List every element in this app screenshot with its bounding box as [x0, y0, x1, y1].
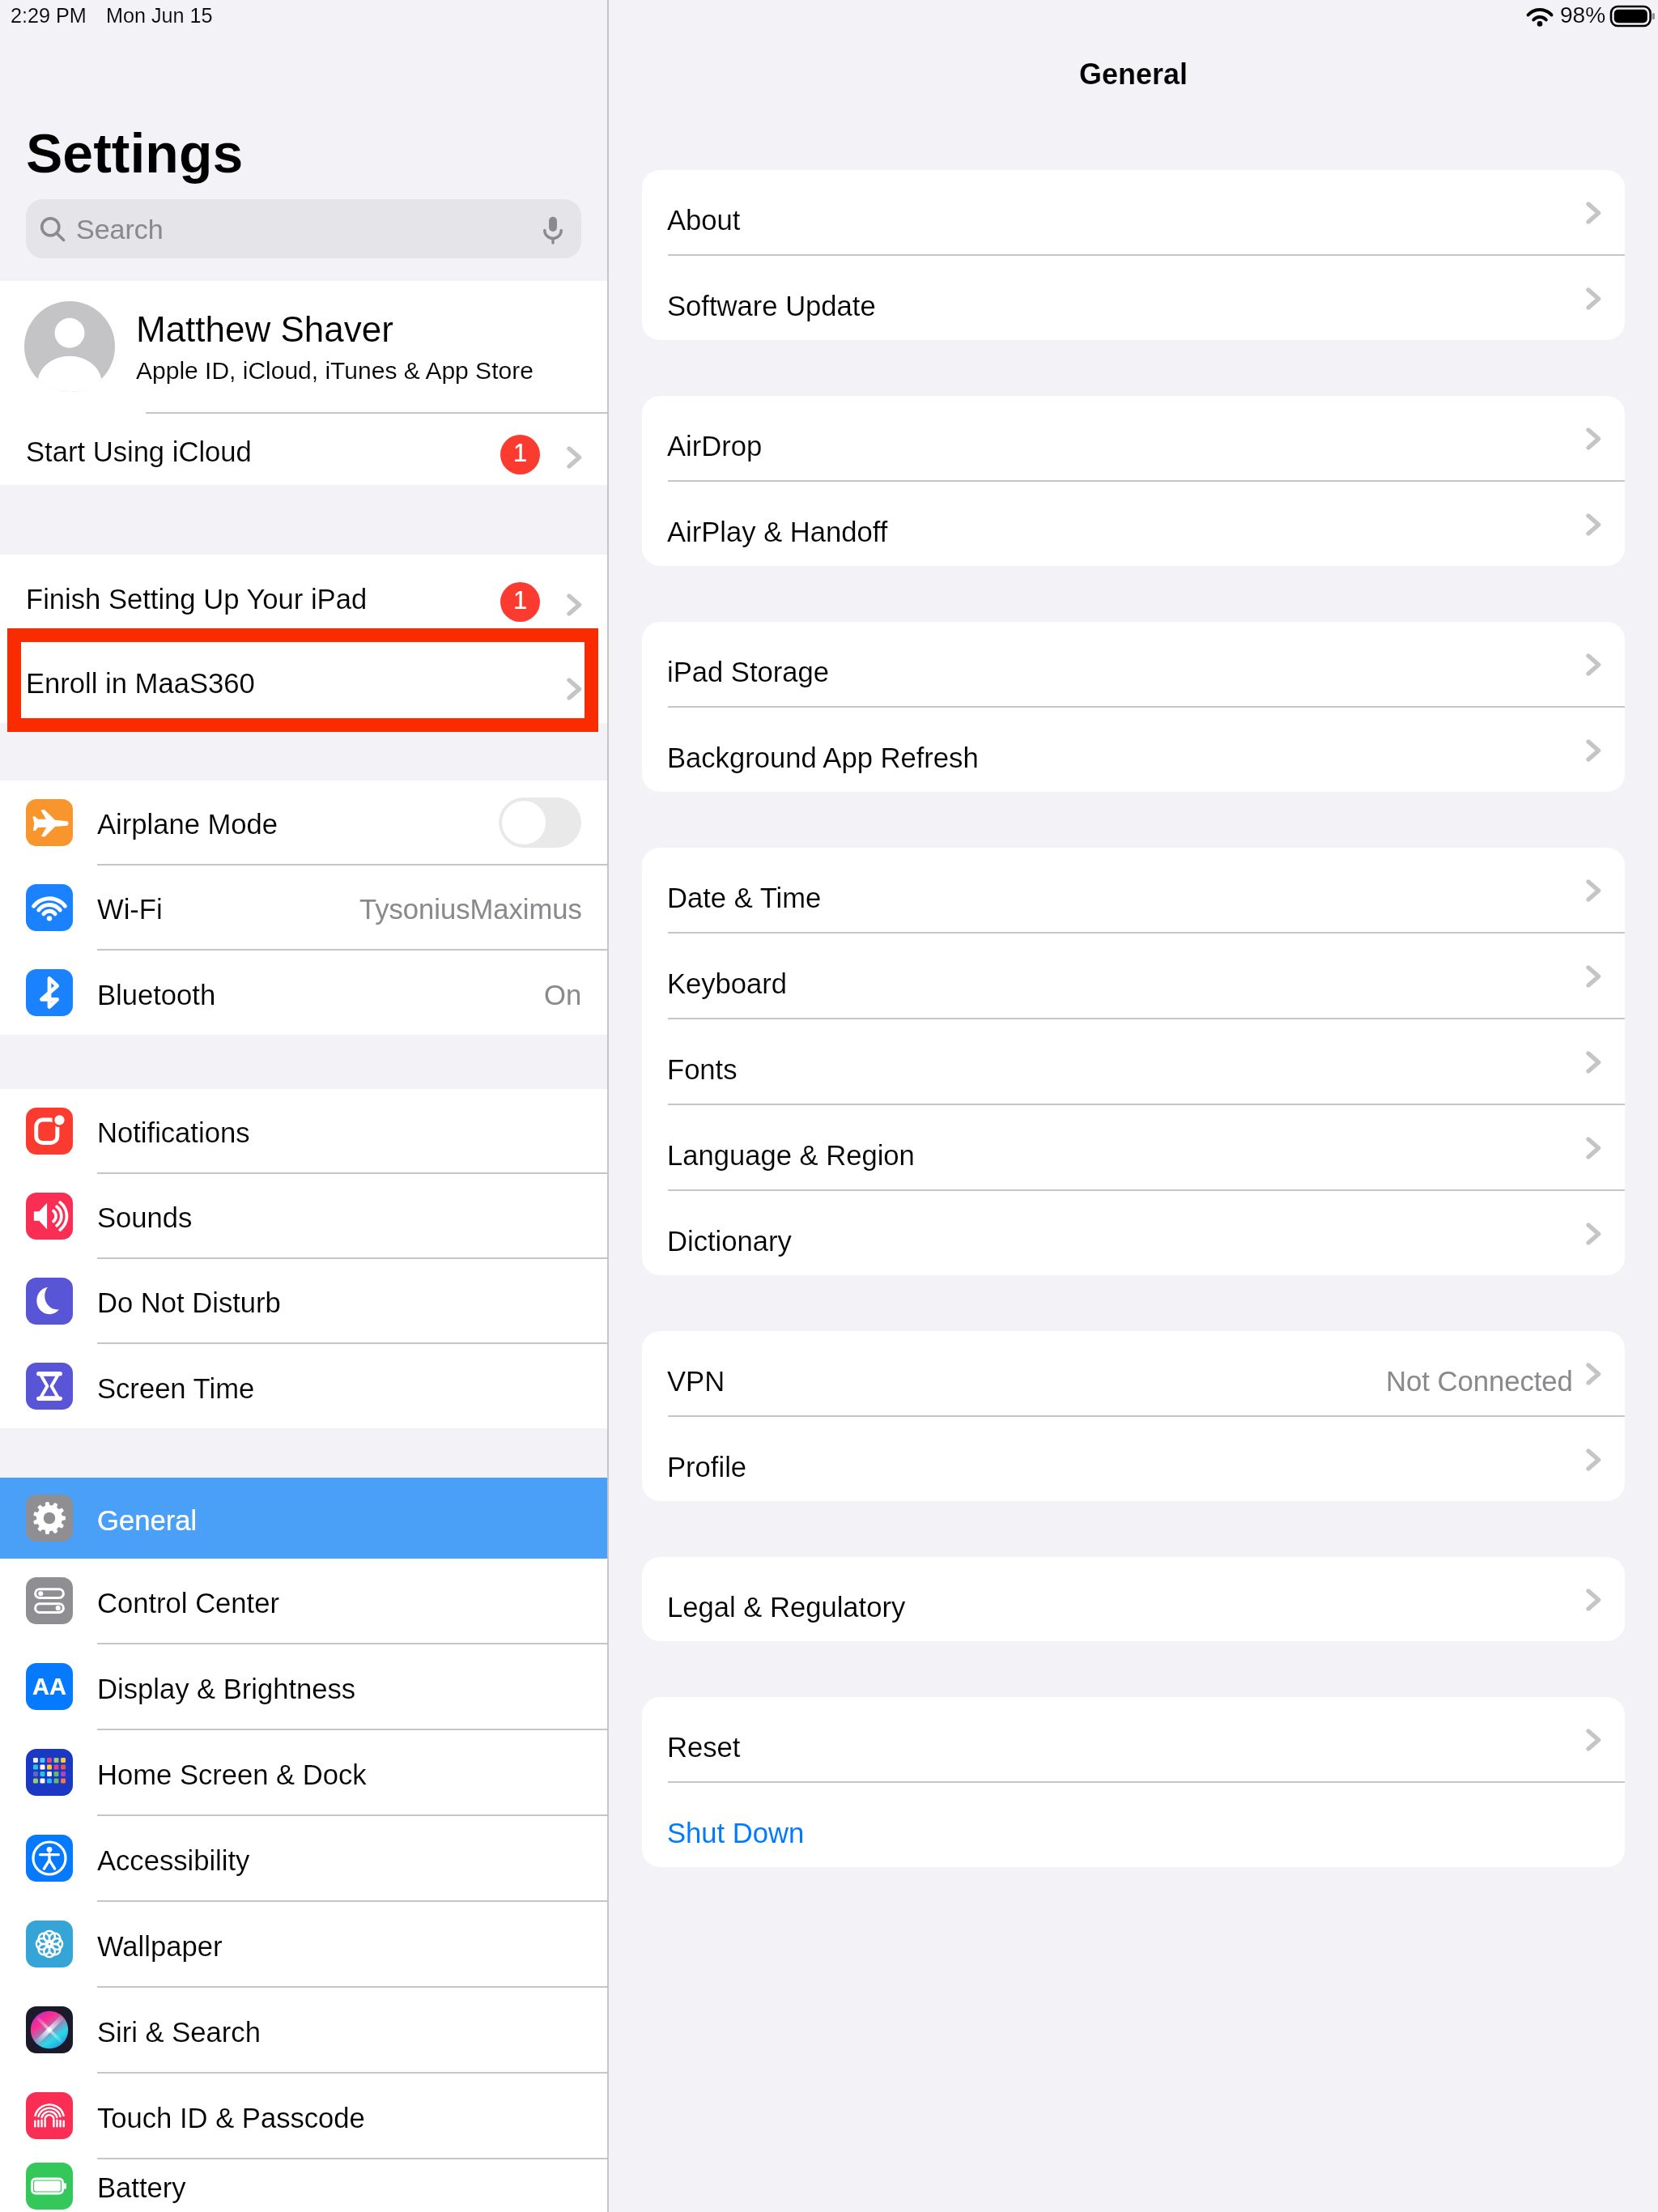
staticText: Matthew Shaver	[136, 309, 393, 349]
staticText: Fonts	[667, 1054, 738, 1086]
staticText: Not Connected	[1386, 1366, 1573, 1397]
staticText: VPN	[667, 1366, 725, 1397]
button[interactable]: Sounds	[0, 1174, 607, 1259]
button[interactable]: Airplane Mode toggle	[499, 798, 581, 848]
button[interactable]: Keyboard	[642, 934, 1625, 1019]
button[interactable]: Start Using iCloud	[0, 414, 607, 485]
staticText: Settings	[26, 122, 244, 184]
staticText: Accessibility	[97, 1845, 250, 1877]
staticText: TysoniusMaximus	[359, 894, 582, 925]
button[interactable]: Matthew Shaver	[0, 281, 607, 412]
button[interactable]: Accessibility	[0, 1816, 607, 1902]
staticText: Touch ID & Passcode	[97, 2103, 365, 2134]
button[interactable]: Finish Setting Up Your iPad	[0, 555, 607, 639]
staticText: 1	[513, 439, 528, 467]
staticText: Siri & Search	[97, 2017, 261, 2048]
staticText: Enroll in MaaS360	[26, 668, 255, 700]
button[interactable]: iPad Storage	[642, 622, 1625, 708]
button[interactable]: Search	[26, 199, 581, 258]
staticText: AirDrop	[667, 431, 763, 462]
staticText: Wi-Fi	[97, 894, 163, 925]
staticText: 1	[513, 586, 528, 615]
button[interactable]: Home Screen & Dock	[0, 1730, 607, 1816]
staticText: Keyboard	[667, 968, 788, 1000]
staticText: Start Using iCloud	[26, 436, 252, 468]
button[interactable]: Enroll in MaaS360	[0, 639, 607, 723]
button[interactable]: Bluetooth	[0, 951, 607, 1035]
staticText: General	[609, 57, 1658, 90]
staticText: General	[97, 1505, 198, 1537]
button[interactable]: Control Center	[0, 1559, 607, 1644]
button[interactable]: Date & Time	[642, 848, 1625, 934]
staticText: Airplane Mode	[97, 809, 278, 840]
button[interactable]: Do Not Disturb	[0, 1259, 607, 1344]
staticText: Control Center	[97, 1588, 279, 1619]
button[interactable]: Dictation	[538, 214, 568, 245]
button[interactable]: Language & Region	[642, 1105, 1625, 1191]
staticText: Screen Time	[97, 1373, 255, 1405]
staticText: Sounds	[97, 1202, 193, 1234]
button[interactable]: Background App Refresh	[642, 708, 1625, 792]
staticText: Software Update	[667, 291, 876, 322]
button[interactable]: Wi-Fi	[0, 866, 607, 951]
button[interactable]: Legal & Regulatory	[642, 1557, 1625, 1641]
staticText: Dictionary	[667, 1226, 792, 1257]
button[interactable]: AirPlay & Handoff	[642, 482, 1625, 566]
staticText: AA	[32, 1674, 66, 1699]
button[interactable]: Notifications	[0, 1089, 607, 1174]
button[interactable]: About	[642, 170, 1625, 256]
button[interactable]: Screen Time	[0, 1344, 607, 1428]
staticText: Apple ID, iCloud, iTunes & App Store	[136, 357, 534, 385]
staticText: Battery	[97, 2172, 186, 2204]
button[interactable]: General	[0, 1478, 607, 1559]
button[interactable]: Shut Down	[642, 1783, 1625, 1867]
button[interactable]: VPN	[642, 1331, 1625, 1417]
button[interactable]: Reset	[642, 1697, 1625, 1783]
button[interactable]: Battery	[0, 2159, 607, 2212]
staticText: Home Screen & Dock	[97, 1759, 367, 1791]
staticText: Date & Time	[667, 883, 822, 914]
button[interactable]: Fonts	[642, 1019, 1625, 1105]
button[interactable]: Touch ID & Passcode	[0, 2074, 607, 2159]
button[interactable]: Dictionary	[642, 1191, 1625, 1275]
staticText: Mon Jun 15	[106, 4, 213, 27]
staticText: AirPlay & Handoff	[667, 517, 888, 548]
button[interactable]: Wallpaper	[0, 1902, 607, 1988]
button[interactable]: Siri & Search	[0, 1988, 607, 2074]
staticText: iPad Storage	[667, 657, 830, 688]
staticText: 2:29 PM	[11, 4, 87, 27]
button[interactable]: Airplane Mode	[0, 781, 607, 866]
button[interactable]: AirDrop	[642, 396, 1625, 482]
staticText: About	[667, 205, 741, 236]
staticText: Notifications	[97, 1117, 250, 1149]
staticText: Profile	[667, 1452, 747, 1483]
staticText: Display & Brightness	[97, 1674, 356, 1705]
staticText: 98%	[1560, 2, 1606, 28]
staticText: Reset	[667, 1732, 741, 1763]
staticText: Background App Refresh	[667, 742, 979, 774]
staticText: Finish Setting Up Your iPad	[26, 584, 368, 615]
button[interactable]: Profile	[642, 1417, 1625, 1501]
staticText: Search	[76, 214, 164, 245]
button[interactable]: AA	[0, 1644, 607, 1730]
staticText: Language & Region	[667, 1140, 915, 1172]
staticText: Shut Down	[667, 1818, 805, 1849]
staticText: Do Not Disturb	[97, 1287, 281, 1319]
staticText: On	[544, 980, 582, 1011]
staticText: Wallpaper	[97, 1931, 223, 1963]
staticText: Legal & Regulatory	[667, 1592, 906, 1623]
staticText: Bluetooth	[97, 980, 216, 1011]
button[interactable]: Software Update	[642, 256, 1625, 340]
